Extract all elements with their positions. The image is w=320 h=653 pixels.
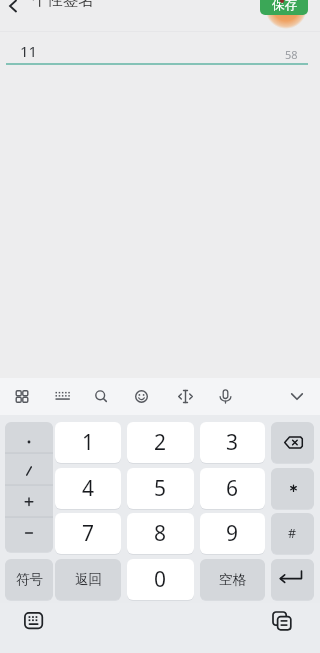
button[interactable]: 5 xyxy=(127,468,194,509)
button[interactable]: 7 xyxy=(55,513,121,554)
button[interactable] xyxy=(128,383,156,410)
button[interactable]: 3 xyxy=(200,422,265,463)
button[interactable]: 1 xyxy=(55,422,121,463)
staticText: 9 xyxy=(226,519,239,548)
staticText: 保存 xyxy=(272,0,297,13)
button[interactable]: 符号 xyxy=(5,559,53,600)
staticText: 6 xyxy=(226,474,239,503)
button[interactable]: # xyxy=(271,513,314,554)
staticText: 3 xyxy=(226,428,239,457)
button[interactable]: 保存 xyxy=(260,0,308,15)
staticText: 空格 xyxy=(219,571,246,588)
button[interactable] xyxy=(8,383,36,410)
button[interactable] xyxy=(5,422,53,552)
button[interactable]: 8 xyxy=(127,513,194,554)
button[interactable]: 9 xyxy=(200,513,265,554)
button[interactable] xyxy=(0,0,30,16)
staticText: 4 xyxy=(82,474,95,503)
button[interactable] xyxy=(271,422,314,463)
staticText: 58 xyxy=(285,47,298,62)
staticText: # xyxy=(288,525,297,542)
staticText: 8 xyxy=(154,519,167,548)
button[interactable]: 6 xyxy=(200,468,265,509)
button[interactable] xyxy=(271,468,314,509)
button[interactable] xyxy=(172,383,200,410)
staticText: 11 xyxy=(20,41,38,61)
button[interactable] xyxy=(24,611,44,631)
staticText: 个性签名 xyxy=(32,0,94,10)
button[interactable]: 返回 xyxy=(55,559,121,600)
button[interactable] xyxy=(212,383,240,410)
button[interactable]: 0 xyxy=(127,559,194,600)
button[interactable] xyxy=(87,383,115,410)
staticText: 7 xyxy=(82,519,95,548)
staticText: 5 xyxy=(154,474,167,503)
button[interactable] xyxy=(283,383,311,410)
button[interactable]: 2 xyxy=(127,422,194,463)
staticText: 2 xyxy=(154,428,167,457)
button[interactable] xyxy=(269,609,295,635)
button[interactable] xyxy=(271,559,314,600)
staticText: 符号 xyxy=(16,571,43,588)
button[interactable]: 4 xyxy=(55,468,121,509)
button[interactable] xyxy=(6,34,308,65)
staticText: 返回 xyxy=(75,571,102,588)
staticText: 0 xyxy=(154,565,167,594)
button[interactable]: 空格 xyxy=(200,559,265,600)
staticText: 1 xyxy=(82,428,95,457)
button[interactable] xyxy=(48,383,76,410)
